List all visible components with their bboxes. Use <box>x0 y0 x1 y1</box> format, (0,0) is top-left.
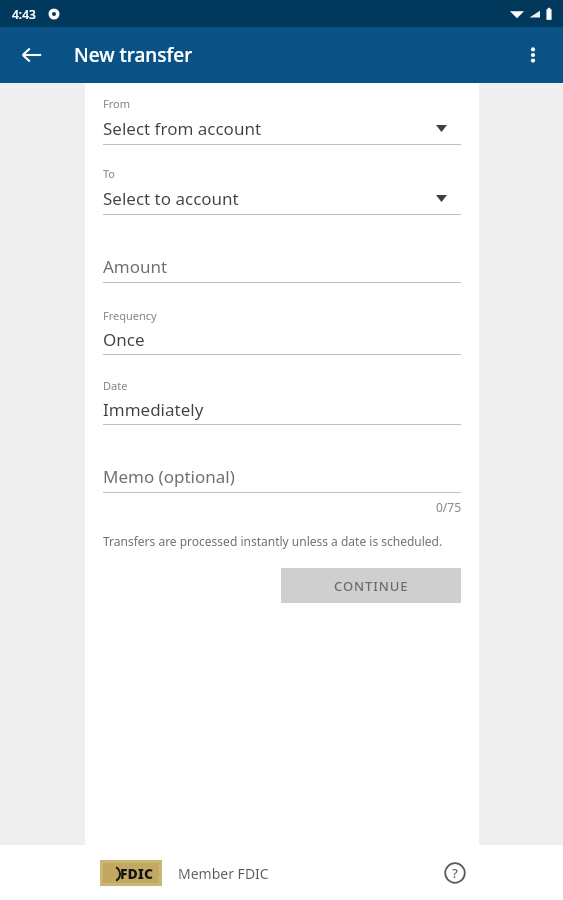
staticText: 0/75 <box>103 499 461 515</box>
staticText: CONTINUE <box>334 577 409 595</box>
staticText: 4:43 <box>12 6 36 22</box>
button[interactable]: Memo (optional) <box>103 463 461 493</box>
button[interactable]: Help <box>435 853 475 893</box>
button[interactable]: Immediately <box>103 393 461 425</box>
button[interactable]: Amount <box>103 253 461 283</box>
button[interactable]: CONTINUE <box>281 568 461 603</box>
staticText: FDIC <box>120 864 154 883</box>
button[interactable]: More options <box>509 31 557 79</box>
button[interactable]: Select to account <box>103 181 461 215</box>
staticText: ? <box>452 864 458 882</box>
button[interactable]: Select from account <box>103 111 461 145</box>
staticText: Member FDIC <box>178 864 269 883</box>
button[interactable]: Back <box>8 31 56 79</box>
staticText: From <box>103 96 130 111</box>
staticText: Memo (optional) <box>103 465 235 488</box>
staticText: To <box>103 166 116 181</box>
staticText: Date <box>103 378 128 393</box>
staticText: Transfers are processed instantly unless… <box>103 533 443 549</box>
staticText: Select to account <box>103 187 239 210</box>
staticText: Amount <box>103 255 168 278</box>
staticText: Once <box>103 328 145 351</box>
staticText: Frequency <box>103 308 157 323</box>
button[interactable]: Once <box>103 323 461 355</box>
staticText: New transfer <box>74 42 193 68</box>
staticText: Immediately <box>103 398 204 421</box>
staticText: Select from account <box>103 117 262 140</box>
